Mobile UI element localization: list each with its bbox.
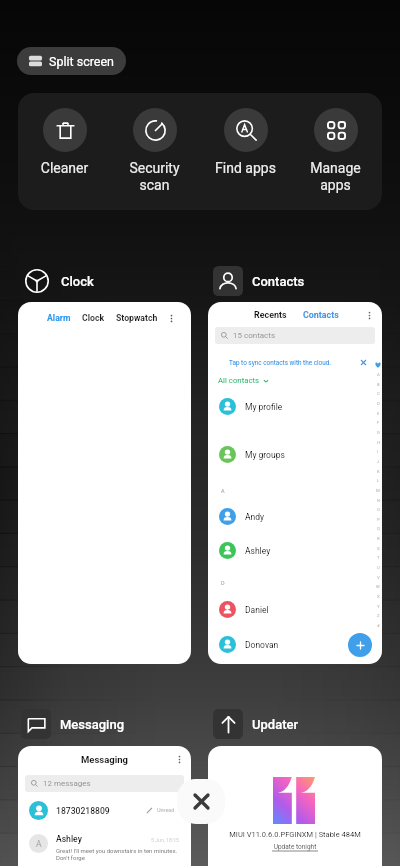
staticText: Updater <box>252 717 299 732</box>
staticText: X <box>377 594 380 599</box>
staticText: Manage apps <box>291 160 380 194</box>
button[interactable]: Find apps <box>201 93 290 176</box>
staticText: Recents <box>254 310 287 320</box>
staticText: 5 Jun, 18:15 <box>151 837 180 843</box>
staticText: Cleaner <box>20 160 109 176</box>
staticText: My profile <box>245 402 283 412</box>
staticText: All contacts <box>218 376 260 385</box>
staticText: # <box>377 623 380 628</box>
button[interactable]: Manage apps <box>291 93 380 194</box>
staticText: Tap to sync contacts with the cloud. <box>229 359 332 367</box>
staticText: Unread <box>157 807 175 813</box>
staticText: Clock <box>61 274 94 289</box>
staticText: B <box>377 382 380 387</box>
staticText: Messaging <box>18 754 191 765</box>
button[interactable]: Alarm <box>18 302 191 664</box>
button[interactable]: MIUI V11.0.6.0.PFGINXM | Stable 484M <box>208 746 382 866</box>
staticText: Ashley <box>245 546 271 556</box>
staticText: K <box>377 469 380 474</box>
staticText: L <box>377 478 380 483</box>
staticText: D <box>221 580 225 586</box>
staticText: V <box>377 575 380 580</box>
button[interactable]: Split screen <box>17 47 126 75</box>
staticText: M <box>376 488 380 493</box>
button[interactable]: Cleaner <box>20 93 109 176</box>
button[interactable]: Messaging <box>21 709 125 739</box>
button[interactable]: Contacts <box>213 266 305 296</box>
staticText: Security scan <box>110 160 199 194</box>
staticText: Contacts <box>252 274 305 289</box>
staticText: Great! I'll meet you downstairs in ten m… <box>56 847 178 862</box>
staticText: W <box>376 584 380 589</box>
staticText: J <box>377 459 380 464</box>
staticText: Andy <box>245 512 265 522</box>
staticText: 18730218809 <box>56 806 110 816</box>
staticText: Update tonight <box>208 843 382 851</box>
staticText: D <box>377 401 380 406</box>
button[interactable]: Messaging <box>18 746 191 866</box>
staticText: O <box>377 507 380 512</box>
staticText: Clock <box>82 313 105 323</box>
staticText: R <box>377 536 380 541</box>
staticText: Split screen <box>49 54 114 69</box>
staticText: Y <box>377 604 380 609</box>
button[interactable]: Close all <box>177 779 225 824</box>
staticText: I <box>377 449 379 454</box>
staticText: A <box>36 839 42 849</box>
staticText: Donovan <box>245 640 279 650</box>
staticText: MIUI V11.0.6.0.PFGINXM | Stable 484M <box>208 830 382 839</box>
staticText: 12 messages <box>43 779 91 788</box>
staticText: P <box>377 517 380 522</box>
staticText: C <box>377 391 380 396</box>
button[interactable]: Add contact <box>348 633 372 657</box>
button[interactable]: Security scan <box>110 93 199 194</box>
button[interactable]: Clock <box>22 266 94 296</box>
staticText: 15 contacts <box>233 331 276 340</box>
staticText: S <box>377 546 380 551</box>
staticText: F <box>377 420 380 425</box>
staticText: Z <box>377 613 380 618</box>
button[interactable]: Recents <box>208 302 382 664</box>
staticText: Daniel <box>245 605 269 615</box>
staticText: Find apps <box>201 160 290 176</box>
staticText: Q <box>377 526 380 531</box>
button[interactable]: Updater <box>213 709 299 739</box>
staticText: T <box>377 555 380 560</box>
staticText: N <box>377 498 380 503</box>
staticText: G <box>377 430 380 435</box>
staticText: Contacts <box>303 310 339 320</box>
staticText: U <box>377 565 380 570</box>
staticText: Ashley <box>56 834 82 844</box>
staticText: Alarm <box>47 313 71 323</box>
staticText: E <box>377 411 380 416</box>
staticText: H <box>377 440 380 445</box>
staticText: Stopwatch <box>116 313 158 323</box>
staticText: A <box>377 372 380 377</box>
staticText: A <box>221 488 225 494</box>
staticText: My groups <box>245 450 285 460</box>
staticText: Messaging <box>60 717 125 732</box>
